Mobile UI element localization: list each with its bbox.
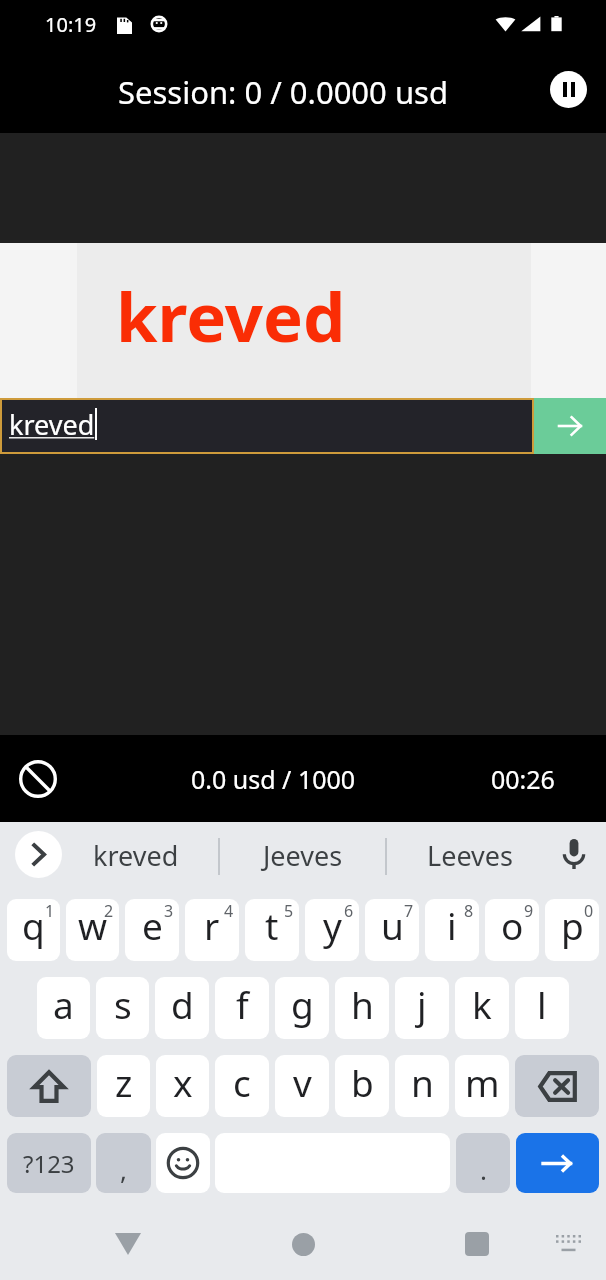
staticText: g	[291, 979, 314, 1029]
button[interactable]: t	[245, 899, 299, 961]
button[interactable]: Jeeves	[220, 827, 385, 895]
staticText: kreved	[116, 270, 346, 361]
button[interactable]: g	[275, 977, 329, 1039]
button[interactable]: b	[335, 1055, 389, 1117]
staticText: Session: 0 / 0.0000 usd	[118, 71, 448, 113]
button[interactable]: q	[7, 899, 60, 961]
staticText: u	[381, 900, 404, 950]
button[interactable]: kreved	[0, 398, 534, 454]
staticText: p	[561, 900, 584, 950]
button[interactable]: ?123	[7, 1133, 91, 1193]
staticText: n	[411, 1057, 434, 1107]
staticText: k	[472, 979, 492, 1029]
staticText: Leeves	[427, 837, 513, 874]
staticText: c	[233, 1057, 251, 1107]
staticText: o	[501, 900, 524, 950]
button[interactable]: p	[545, 899, 599, 961]
staticText: 5	[284, 900, 294, 922]
staticText: y	[323, 900, 342, 950]
staticText: j	[417, 979, 427, 1029]
staticText: 3	[164, 900, 174, 922]
staticText: s	[114, 979, 132, 1029]
staticText: z	[115, 1057, 133, 1107]
button[interactable]: u	[365, 899, 419, 961]
staticText: m	[465, 1057, 500, 1107]
button[interactable]: y	[305, 899, 359, 961]
button[interactable]: Pause	[550, 71, 587, 108]
button[interactable]: e	[125, 899, 179, 961]
staticText: r	[204, 900, 220, 950]
button[interactable]: o	[485, 899, 539, 961]
button[interactable]: j	[395, 977, 449, 1039]
staticText: x	[173, 1057, 193, 1107]
button[interactable]: .	[456, 1133, 510, 1193]
button[interactable]: Emoji	[156, 1133, 210, 1193]
button[interactable]: kreved	[54, 827, 218, 895]
button[interactable]: Home	[279, 1220, 327, 1268]
button[interactable]: s	[96, 977, 149, 1039]
staticText: 4	[224, 900, 234, 922]
staticText: 8	[464, 900, 474, 922]
staticText: q	[22, 900, 45, 950]
button[interactable]: v	[275, 1055, 329, 1117]
staticText: t	[265, 900, 279, 950]
button[interactable]: Leeves	[387, 827, 552, 895]
staticText: 0.0 usd / 1000	[191, 762, 356, 796]
button[interactable]: k	[455, 977, 509, 1039]
button[interactable]: i	[425, 899, 479, 961]
staticText: 9	[524, 900, 534, 922]
button[interactable]: x	[156, 1055, 209, 1117]
staticText: 7	[404, 900, 414, 922]
button[interactable]: Enter	[516, 1133, 599, 1193]
button[interactable]: Block	[16, 757, 60, 801]
staticText: f	[236, 979, 249, 1029]
button[interactable]: More suggestions	[15, 831, 62, 878]
button[interactable]: Submit	[534, 398, 606, 454]
staticText: e	[142, 900, 163, 950]
staticText: 2	[104, 900, 114, 922]
button[interactable]: Shift	[7, 1055, 91, 1117]
staticText: v	[293, 1057, 312, 1107]
staticText: ,	[120, 1152, 127, 1187]
button[interactable]: m	[455, 1055, 509, 1117]
staticText: 00:26	[491, 762, 555, 796]
staticText: kreved	[9, 406, 95, 443]
staticText: 6	[344, 900, 354, 922]
staticText: d	[171, 979, 194, 1029]
button[interactable]: h	[335, 977, 389, 1039]
button[interactable]: l	[515, 977, 569, 1039]
button[interactable]: w	[66, 899, 119, 961]
button[interactable]: a	[37, 977, 90, 1039]
staticText: 1	[45, 900, 55, 922]
staticText: w	[78, 900, 108, 950]
button[interactable]: ,	[96, 1133, 151, 1193]
button[interactable]: Recents	[453, 1220, 501, 1268]
button[interactable]: d	[155, 977, 209, 1039]
staticText: ?123	[23, 1147, 75, 1180]
button[interactable]: r	[185, 899, 239, 961]
staticText: i	[447, 900, 457, 950]
button[interactable]: Backspace	[515, 1055, 599, 1117]
staticText: kreved	[93, 837, 179, 874]
staticText: l	[537, 979, 547, 1029]
button[interactable]: n	[395, 1055, 449, 1117]
staticText: a	[53, 979, 74, 1029]
staticText: b	[351, 1057, 374, 1107]
button[interactable]: Switch keyboard	[547, 1223, 589, 1265]
staticText: h	[351, 979, 374, 1029]
staticText: 0	[584, 900, 594, 922]
staticText: 10:19	[45, 11, 97, 38]
button[interactable]: f	[215, 977, 269, 1039]
staticText: Jeeves	[263, 837, 343, 874]
button[interactable]: z	[97, 1055, 150, 1117]
staticText: .	[480, 1152, 487, 1187]
button[interactable]: Back	[104, 1220, 152, 1268]
button[interactable]: c	[215, 1055, 269, 1117]
button[interactable]: Voice input	[553, 833, 595, 875]
